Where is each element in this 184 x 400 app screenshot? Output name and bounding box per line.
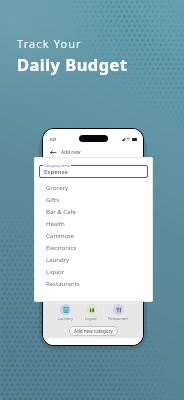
button[interactable]: Back <box>48 148 57 157</box>
staticText: Restaurants <box>46 280 80 288</box>
staticText: Add new <box>61 149 81 156</box>
staticText: Add new category <box>74 328 113 334</box>
button[interactable]: Restaurant <box>108 304 128 321</box>
staticText: Laundry <box>58 316 73 321</box>
button[interactable]: Laundry <box>34 254 153 266</box>
staticText: Daily Budget <box>17 53 128 75</box>
staticText: Restaurant <box>108 316 128 321</box>
button[interactable]: Liquor <box>85 304 97 321</box>
button[interactable]: Grocery <box>34 182 153 194</box>
button[interactable]: Gifts <box>34 194 153 206</box>
staticText: Electronics <box>46 244 77 252</box>
button[interactable]: Bar & Cafe <box>34 206 153 218</box>
button[interactable]: Health <box>34 218 153 230</box>
staticText: Liquor <box>46 268 65 276</box>
button[interactable]: Electronics <box>34 242 153 254</box>
staticText: Laundry <box>46 256 70 264</box>
button[interactable]: Commute <box>34 230 153 242</box>
staticText: Category name <box>44 163 70 168</box>
staticText: Bar & Cafe <box>46 208 76 216</box>
staticText: Health <box>46 220 65 228</box>
staticText: Commute <box>46 232 74 240</box>
button[interactable]: Expense <box>39 165 148 178</box>
button[interactable]: Liquor <box>34 266 153 278</box>
button[interactable]: Laundry <box>58 304 73 321</box>
button[interactable]: Add new category <box>69 326 118 336</box>
button[interactable]: Restaurants <box>34 278 153 290</box>
staticText: Grocery <box>46 184 69 192</box>
staticText: Track Your <box>17 36 82 51</box>
staticText: Liquor <box>85 316 97 321</box>
staticText: Expense <box>44 168 68 176</box>
staticText: 9:27 <box>50 138 57 142</box>
staticText: Gifts <box>46 196 60 204</box>
